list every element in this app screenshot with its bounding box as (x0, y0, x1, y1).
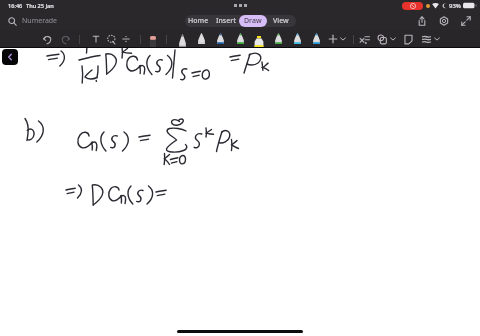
button[interactable]: Insert (212, 15, 239, 27)
button[interactable]: Text (88, 30, 104, 48)
button[interactable]: Pen (271, 33, 285, 48)
button[interactable]: More shapes (385, 30, 401, 48)
button[interactable]: Undo (39, 30, 55, 48)
staticText: Thu 25 Jan (26, 2, 54, 10)
button[interactable]: Pen (194, 33, 208, 48)
staticText: 16:46 (8, 2, 23, 10)
button[interactable]: Eraser (146, 30, 160, 48)
button[interactable]: Redo (57, 30, 73, 48)
button[interactable]: Settings (437, 14, 451, 28)
button[interactable]: More pens (335, 30, 351, 48)
staticText: View (273, 16, 289, 26)
button[interactable]: Clean up ink (356, 30, 372, 48)
button[interactable]: Layers (418, 30, 434, 48)
button[interactable]: Pen (213, 33, 227, 48)
button[interactable]: View (267, 15, 294, 27)
button[interactable]: Highlighter (251, 30, 267, 48)
button[interactable]: Shapes (374, 30, 390, 48)
button[interactable]: Pen (309, 33, 323, 48)
button[interactable]: Note (400, 30, 416, 48)
button[interactable]: More layers (429, 30, 445, 48)
staticText: Insert (216, 16, 236, 26)
button[interactable]: Pen (233, 33, 247, 48)
button[interactable]: Home (185, 15, 212, 27)
button[interactable]: Pen (290, 33, 304, 48)
button[interactable]: Divide (118, 30, 134, 48)
staticText: 93% (449, 2, 461, 10)
button[interactable]: Add pen (325, 30, 341, 48)
button[interactable]: Back (2, 49, 18, 65)
button[interactable]: Lasso (103, 30, 119, 48)
button[interactable]: Share (415, 14, 429, 28)
button[interactable]: Collapse (459, 14, 473, 28)
staticText: Numerade (22, 16, 58, 26)
button[interactable]: Search (6, 15, 18, 27)
staticText: Draw (244, 16, 262, 26)
staticText: Home (188, 16, 209, 26)
button[interactable]: Pen (175, 34, 189, 48)
button[interactable]: Draw (239, 15, 267, 27)
